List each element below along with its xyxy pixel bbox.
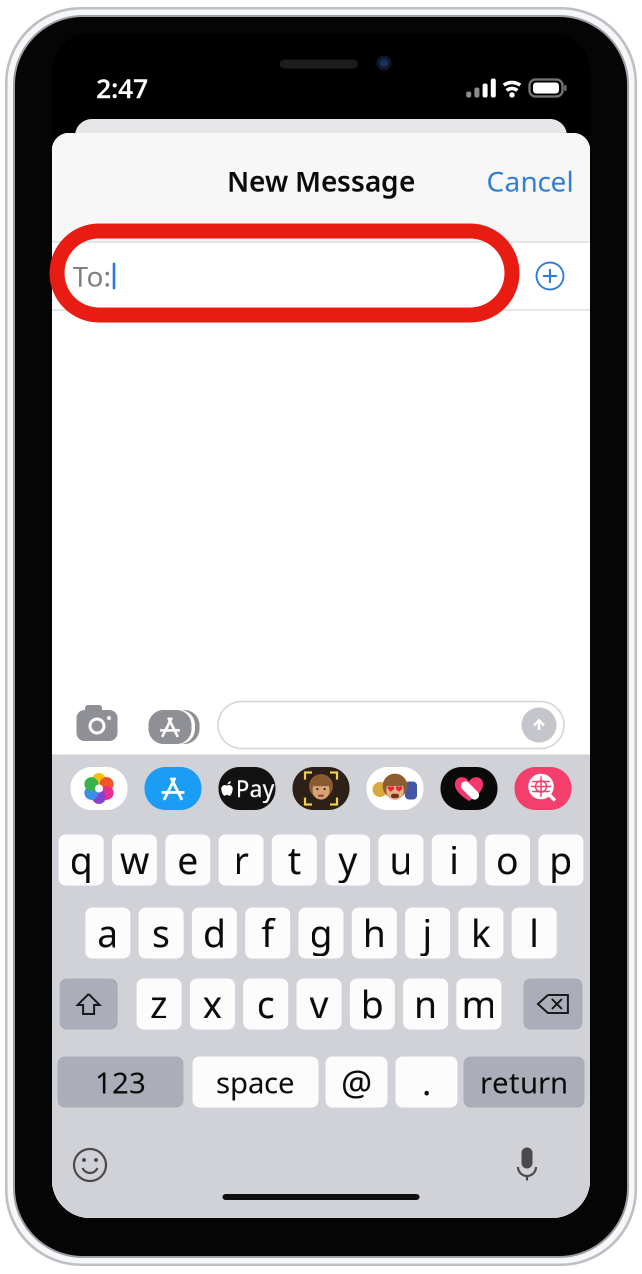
button[interactable]: w xyxy=(112,834,157,885)
staticText: s xyxy=(152,908,170,958)
button[interactable]: m xyxy=(456,978,501,1029)
button[interactable]: Camera xyxy=(75,704,119,746)
staticText: e xyxy=(177,835,198,885)
button[interactable]: Cancel xyxy=(476,154,583,208)
staticText: z xyxy=(150,979,168,1029)
button[interactable]: Memoji xyxy=(292,767,349,810)
button[interactable]: t xyxy=(272,834,317,885)
staticText: To: xyxy=(72,257,111,295)
staticText: n xyxy=(414,979,437,1029)
staticText: x xyxy=(202,979,222,1029)
button[interactable]: return xyxy=(463,1056,584,1107)
staticText: d xyxy=(203,908,226,958)
button[interactable]: Dictate xyxy=(505,1143,549,1187)
button[interactable]: g xyxy=(298,907,343,958)
button[interactable]: x xyxy=(190,978,235,1029)
button[interactable]: space xyxy=(192,1056,318,1107)
button[interactable]: Delete xyxy=(523,978,582,1029)
button[interactable]: q xyxy=(59,834,104,885)
staticText: w xyxy=(120,835,149,885)
button[interactable]: 123 xyxy=(57,1056,183,1107)
button[interactable]: y xyxy=(325,834,370,885)
button[interactable]: s xyxy=(139,907,184,958)
button[interactable]: r xyxy=(218,834,263,885)
button[interactable]: Emoji xyxy=(68,1143,112,1187)
button[interactable]: Apps xyxy=(142,707,198,747)
button[interactable]: j xyxy=(405,907,450,958)
button[interactable]: Photos xyxy=(70,767,127,810)
staticText: o xyxy=(496,835,519,885)
staticText: q xyxy=(70,835,93,885)
staticText: k xyxy=(471,908,491,958)
button[interactable]: Health xyxy=(440,767,497,810)
button[interactable]: Apple Pay xyxy=(218,767,275,810)
button[interactable]: n xyxy=(403,978,448,1029)
staticText: p xyxy=(549,835,572,885)
button[interactable]: Search xyxy=(514,767,571,810)
staticText: m xyxy=(461,979,496,1029)
button[interactable]: z xyxy=(137,978,182,1029)
button[interactable]: Send xyxy=(521,707,556,742)
staticText: . xyxy=(422,1059,431,1105)
staticText: Cancel xyxy=(486,162,573,200)
staticText: i xyxy=(449,835,459,885)
staticText: f xyxy=(261,908,274,958)
staticText: a xyxy=(97,908,118,958)
button[interactable]: i xyxy=(432,834,477,885)
button[interactable]: v xyxy=(296,978,341,1029)
staticText: New Message xyxy=(227,162,415,200)
button[interactable]: App Store xyxy=(144,767,201,810)
staticText: r xyxy=(233,835,248,885)
button[interactable]: e xyxy=(165,834,210,885)
button[interactable]: o xyxy=(485,834,530,885)
button[interactable]: l xyxy=(512,907,557,958)
staticText: y xyxy=(338,835,357,885)
staticText: g xyxy=(309,908,332,958)
staticText: v xyxy=(309,979,328,1029)
button[interactable]: u xyxy=(378,834,423,885)
button[interactable]: f xyxy=(245,907,290,958)
button[interactable]: a xyxy=(85,907,130,958)
button[interactable]: p xyxy=(538,834,583,885)
staticText: b xyxy=(361,979,384,1029)
staticText: space xyxy=(216,1062,295,1101)
staticText: 2:47 xyxy=(96,70,148,106)
button[interactable]: Add contact xyxy=(528,254,572,298)
button[interactable]: c xyxy=(243,978,288,1029)
button[interactable]: h xyxy=(352,907,397,958)
staticText: u xyxy=(389,835,412,885)
staticText: 123 xyxy=(95,1062,146,1101)
button[interactable]: k xyxy=(458,907,503,958)
staticText: Pay xyxy=(235,773,274,803)
staticText: j xyxy=(423,908,433,958)
staticText: @ xyxy=(341,1059,372,1105)
staticText: h xyxy=(363,908,386,958)
staticText: t xyxy=(288,835,301,885)
staticText: return xyxy=(480,1062,568,1101)
button[interactable]: d xyxy=(192,907,237,958)
button[interactable]: Memoji xyxy=(366,767,423,810)
button[interactable]: b xyxy=(350,978,395,1029)
button[interactable]: Shift xyxy=(60,978,118,1029)
button[interactable]: . xyxy=(395,1056,457,1107)
staticText: c xyxy=(257,979,275,1029)
staticText: l xyxy=(529,908,539,958)
button[interactable]: @ xyxy=(325,1056,387,1107)
